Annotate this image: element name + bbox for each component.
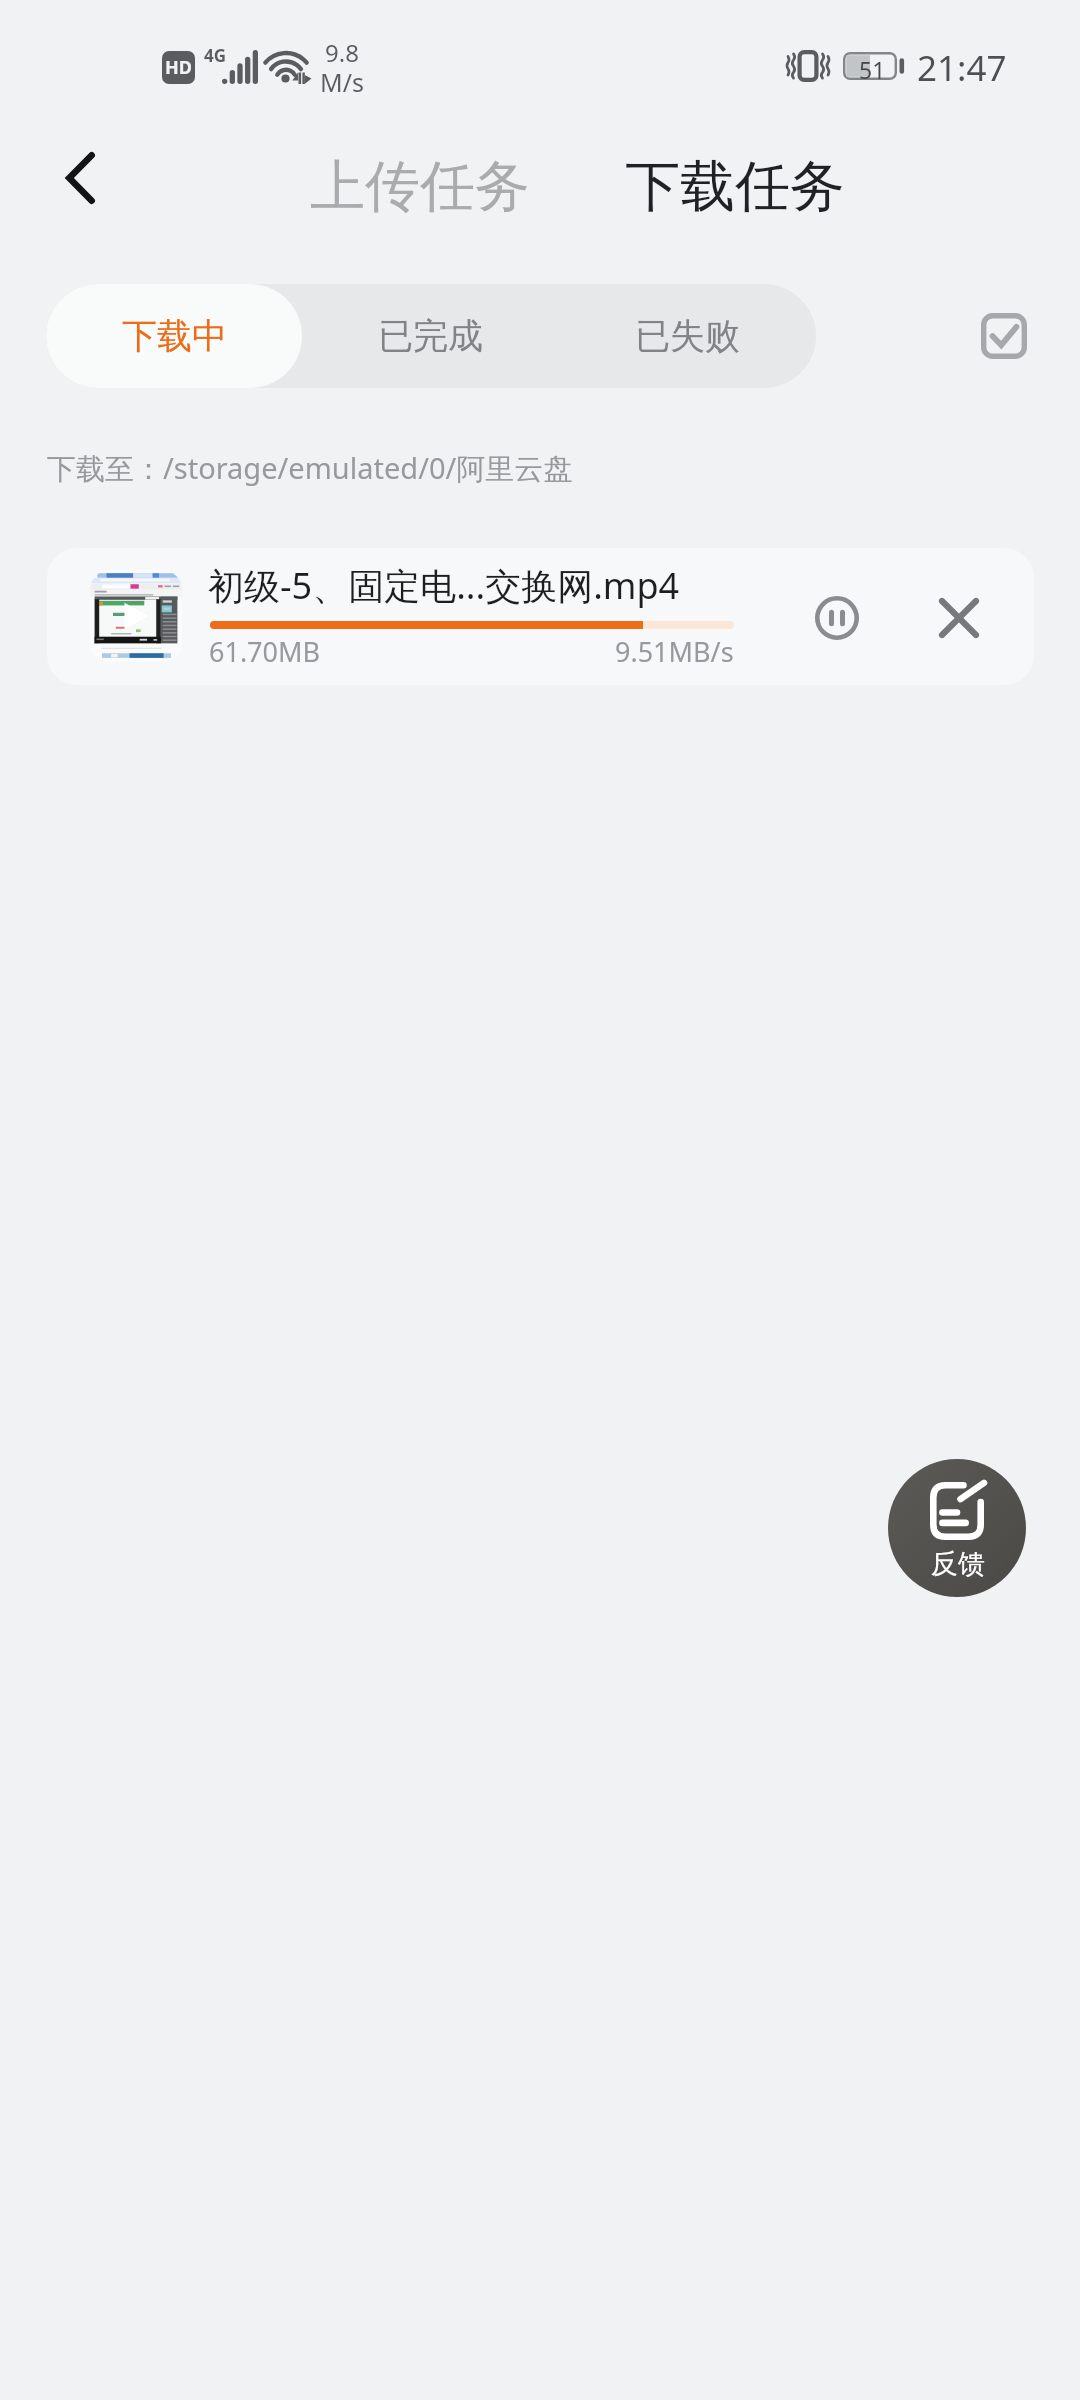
button[interactable]: Pause [792, 573, 882, 663]
button[interactable]: Select all [951, 283, 1057, 389]
staticText: 下载至：/storage/emulated/0/阿里云盘 [47, 448, 573, 488]
button[interactable]: Back [36, 134, 124, 222]
staticText: 下载任务 [625, 152, 845, 221]
button[interactable]: Feedback [888, 1459, 1026, 1597]
staticText: 4G [204, 44, 227, 67]
staticText: 已完成 [378, 314, 483, 358]
staticText: 61.70MB [209, 633, 321, 670]
staticText: 已失败 [635, 314, 740, 358]
button[interactable]: 已失败 [559, 284, 816, 388]
staticText: 9.51MB/s [615, 633, 734, 670]
button[interactable]: 已完成 [302, 284, 559, 388]
button[interactable]: Cancel [914, 573, 1004, 663]
button[interactable]: 下载中 [46, 284, 302, 388]
staticText: 51 [859, 54, 886, 82]
staticText: 初级-5、固定电...交换网.mp4 [208, 561, 680, 610]
staticText: 9.8 [325, 36, 359, 69]
staticText: HD [165, 55, 192, 80]
button[interactable]: 下载任务 [625, 152, 845, 221]
button[interactable]: 上传任务 [310, 152, 530, 221]
staticText: M/s [320, 65, 364, 99]
staticText: 反馈 [931, 1547, 985, 1581]
button[interactable]: 初级-5、固定电...交换网.mp4 [47, 548, 1034, 685]
staticText: 21:47 [917, 44, 1007, 92]
staticText: 下载中 [122, 314, 227, 358]
staticText: 上传任务 [310, 152, 530, 221]
